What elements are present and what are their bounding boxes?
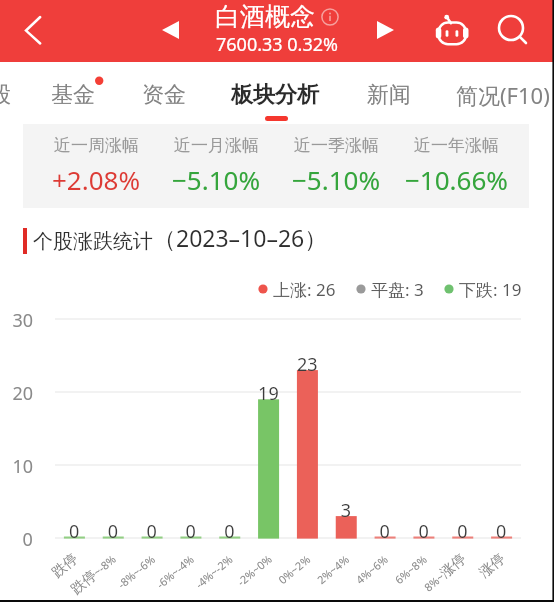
staticText: 7600.33 0.32% (216, 32, 338, 57)
button[interactable]: 板块分析 (208, 62, 342, 124)
button[interactable]: Info (321, 8, 339, 26)
button[interactable]: 上涨: 26 (258, 278, 336, 300)
button[interactable]: 近一年涨幅 (396, 124, 516, 208)
staticText: 板块分析 (231, 81, 319, 109)
staticText: −5.10% (292, 162, 381, 197)
staticText: 近一周涨幅 (54, 135, 139, 156)
staticText: −10.66% (405, 162, 508, 197)
staticText: 上涨: 26 (273, 278, 336, 300)
staticText: 近一季涨幅 (294, 135, 379, 156)
button[interactable]: 近一季涨幅 (276, 124, 396, 208)
button[interactable]: Search (489, 6, 533, 50)
button[interactable]: 新闻 (344, 62, 434, 124)
staticText: 资金 (142, 81, 186, 109)
button[interactable]: 下跌: 19 (444, 278, 522, 300)
button[interactable]: 近一月涨幅 (156, 124, 276, 208)
button[interactable]: 个股涨跌统计 (33, 223, 328, 254)
staticText: 近一年涨幅 (414, 135, 499, 156)
staticText: （2023–10–26） (153, 222, 328, 253)
staticText: 基金 (51, 81, 95, 109)
button[interactable]: 近一周涨幅 (36, 124, 156, 208)
button[interactable]: 基金 (28, 62, 118, 124)
button[interactable]: Next sector (370, 12, 406, 48)
staticText: +2.08% (52, 162, 141, 197)
staticText: 近一月涨幅 (174, 135, 259, 156)
button[interactable]: Previous sector (152, 12, 188, 48)
button[interactable]: AI assistant (426, 4, 474, 52)
button[interactable]: 平盘: 3 (356, 278, 424, 300)
staticText: 简况(F10) (456, 80, 550, 110)
staticText: −5.10% (172, 162, 261, 197)
staticText: 个股涨跌统计 (33, 229, 153, 254)
button[interactable]: 资金 (119, 62, 209, 124)
staticText: 新闻 (367, 81, 411, 109)
button[interactable]: Back (8, 8, 52, 52)
staticText: 白酒概念 (215, 1, 315, 32)
button[interactable]: 股 (0, 62, 34, 124)
staticText: 股 (0, 81, 11, 109)
staticText: 下跌: 19 (459, 278, 522, 300)
button[interactable]: 简况(F10) (433, 62, 554, 124)
staticText: 平盘: 3 (371, 278, 424, 300)
